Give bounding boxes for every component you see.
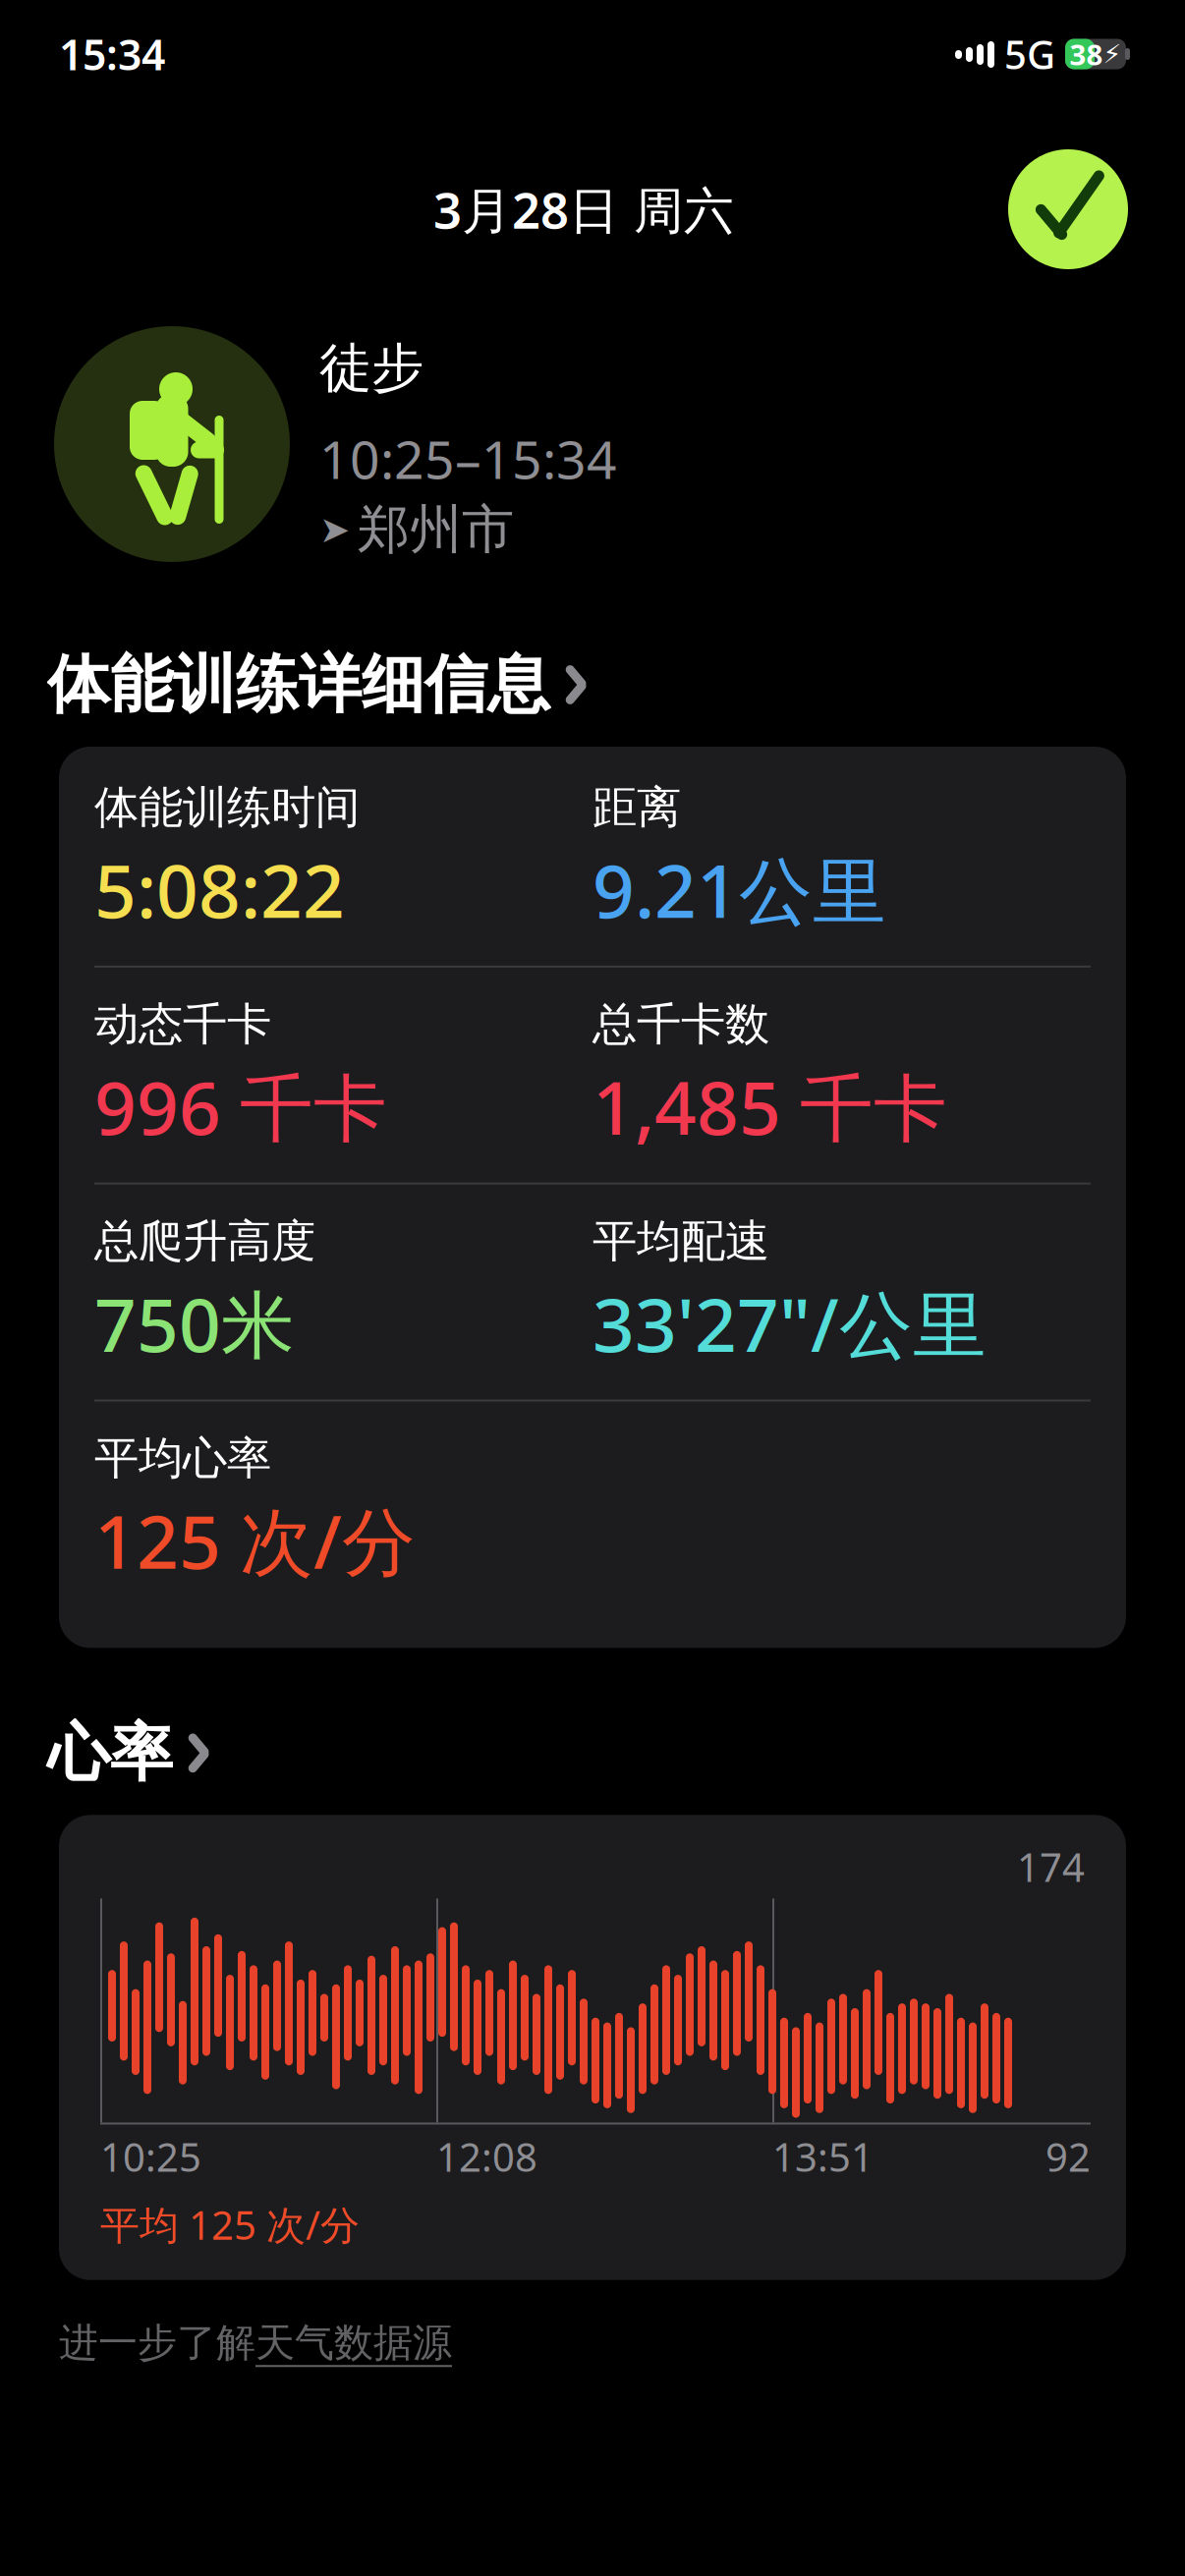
staticText: 体能训练时间 — [94, 780, 360, 835]
staticText: 进一步了解 — [59, 2319, 255, 2367]
button[interactable]: 体能训练详细信息 — [0, 641, 1185, 729]
staticText: 12:08 — [436, 2130, 537, 2183]
staticText: 38 — [1070, 35, 1103, 73]
staticText: ⚡︎ — [1103, 39, 1122, 69]
staticText: 5G — [1004, 28, 1055, 80]
staticText: 体能训练详细信息 — [47, 646, 550, 723]
staticText: 徒步 — [319, 336, 423, 400]
staticText: 郑州市 — [358, 497, 514, 562]
staticText: 平均配速 — [592, 1214, 769, 1269]
staticText: ➤ — [319, 509, 350, 550]
staticText: 平均 125 次/分 — [100, 2198, 360, 2251]
staticText: 750米 — [94, 1275, 295, 1372]
staticText: 33'27"/公里 — [592, 1275, 987, 1372]
button[interactable]: 进一步了解 — [0, 2313, 1185, 2372]
staticText: 1,485 千卡 — [592, 1058, 947, 1155]
staticText: 心率 — [47, 1714, 173, 1792]
staticText: 9.21公里 — [592, 841, 886, 938]
staticText: 174 — [1017, 1840, 1085, 1893]
staticText: 总千卡数 — [592, 997, 769, 1052]
staticText: 125 次/分 — [94, 1492, 416, 1589]
staticText: 92 — [1045, 2130, 1091, 2183]
staticText: 动态千卡 — [94, 997, 271, 1052]
staticText: 平均心率 — [94, 1431, 271, 1486]
button[interactable]: 心率 — [0, 1709, 1185, 1797]
staticText: 13:51 — [772, 2130, 874, 2183]
staticText: 天气数据源 — [255, 2319, 452, 2367]
staticText: 总爬升高度 — [94, 1214, 315, 1269]
staticText: 3月28日 周六 — [433, 176, 734, 242]
button[interactable]: 完成 — [1008, 149, 1128, 269]
staticText: 10:25 — [100, 2130, 201, 2183]
staticText: 996 千卡 — [94, 1058, 387, 1155]
staticText: 5:08:22 — [94, 841, 345, 938]
staticText: 15:34 — [59, 26, 165, 82]
staticText: 10:25–15:34 — [319, 424, 617, 493]
staticText: 距离 — [592, 780, 681, 835]
